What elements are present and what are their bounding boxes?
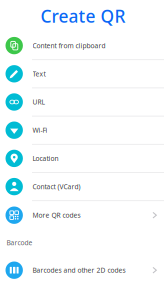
staticText: Barcode <box>6 238 32 247</box>
staticText: Wi-Fi <box>32 126 47 135</box>
button[interactable]: URL <box>0 88 166 116</box>
staticText: Create QR <box>40 4 125 27</box>
staticText: Contact (VCard) <box>32 182 80 191</box>
button[interactable]: More QR codes <box>0 201 166 229</box>
button[interactable]: Contact (VCard) <box>0 173 166 201</box>
staticText: Barcodes and other 2D codes <box>32 266 125 275</box>
staticText: More QR codes <box>32 211 80 220</box>
button[interactable]: Wi-Fi <box>0 116 166 145</box>
staticText: Location <box>32 154 58 163</box>
staticText: Content from clipboard <box>32 41 105 50</box>
staticText: URL <box>32 98 44 106</box>
button[interactable]: Content from clipboard <box>0 32 166 60</box>
staticText: Text <box>32 69 45 78</box>
button[interactable]: Text <box>0 60 166 88</box>
button[interactable]: Location <box>0 145 166 173</box>
button[interactable]: Barcodes and other 2D codes <box>0 256 166 284</box>
